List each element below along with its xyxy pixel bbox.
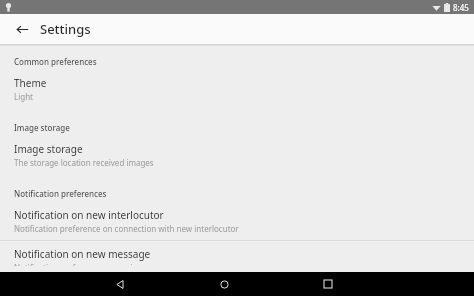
button[interactable]: Notification on new interlocutor — [0, 202, 474, 240]
button[interactable]: Back — [12, 19, 32, 39]
staticText: The storage location received images — [14, 157, 154, 168]
button[interactable]: Back — [109, 273, 131, 295]
staticText: Common preferences — [14, 56, 97, 67]
staticText: Notification preference on connection wi… — [14, 223, 239, 234]
staticText: Theme — [14, 76, 47, 90]
staticText: Settings — [40, 20, 91, 38]
staticText: 8:45 — [453, 2, 469, 13]
staticText: Notification preferences — [14, 188, 107, 199]
button[interactable]: Notification on new message — [0, 241, 474, 272]
staticText: Notification on new interlocutor — [14, 208, 164, 222]
button[interactable]: Image storage — [0, 136, 474, 174]
staticText: Notification on new message — [14, 247, 151, 261]
button[interactable]: Home — [213, 273, 235, 295]
staticText: Notification preference on receive new m… — [14, 262, 195, 266]
button[interactable]: Recent apps — [317, 273, 339, 295]
button[interactable]: Theme — [0, 70, 474, 108]
staticText: Image storage — [14, 122, 70, 133]
staticText: Light — [14, 91, 34, 102]
staticText: Image storage — [14, 142, 83, 156]
